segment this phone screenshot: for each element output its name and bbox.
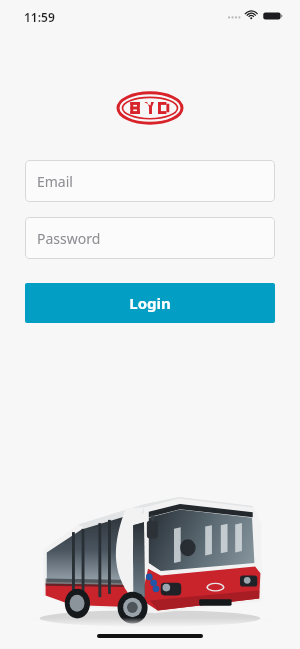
staticText: 11:59 xyxy=(24,9,55,25)
button[interactable]: Login xyxy=(25,283,275,323)
button[interactable]: Password xyxy=(25,217,275,259)
button[interactable]: Email xyxy=(25,160,275,202)
staticText: Login xyxy=(129,293,171,313)
staticText: Email xyxy=(37,172,73,191)
staticText: Password xyxy=(37,229,101,248)
